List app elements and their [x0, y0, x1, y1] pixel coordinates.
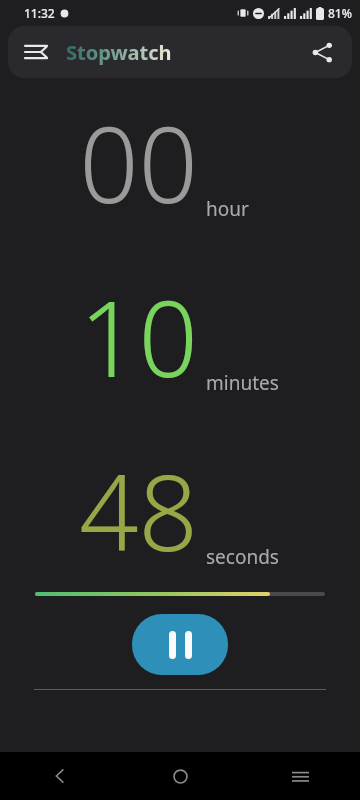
staticText: minutes: [206, 370, 279, 396]
button[interactable]: Recent apps: [240, 752, 360, 800]
button[interactable]: Pause stopwatch: [132, 614, 228, 675]
staticText: 10: [79, 266, 198, 408]
staticText: 00: [79, 92, 198, 234]
button[interactable]: Share: [300, 30, 344, 74]
staticText: 48: [79, 440, 198, 582]
button[interactable]: Home: [120, 752, 240, 800]
staticText: seconds: [206, 544, 279, 570]
staticText: 11:32: [24, 5, 55, 21]
staticText: Stopwatch: [66, 39, 172, 66]
button[interactable]: Back: [0, 752, 120, 800]
button[interactable]: Open navigation menu: [14, 30, 58, 74]
staticText: hour: [206, 196, 249, 222]
staticText: 81%: [328, 5, 352, 21]
